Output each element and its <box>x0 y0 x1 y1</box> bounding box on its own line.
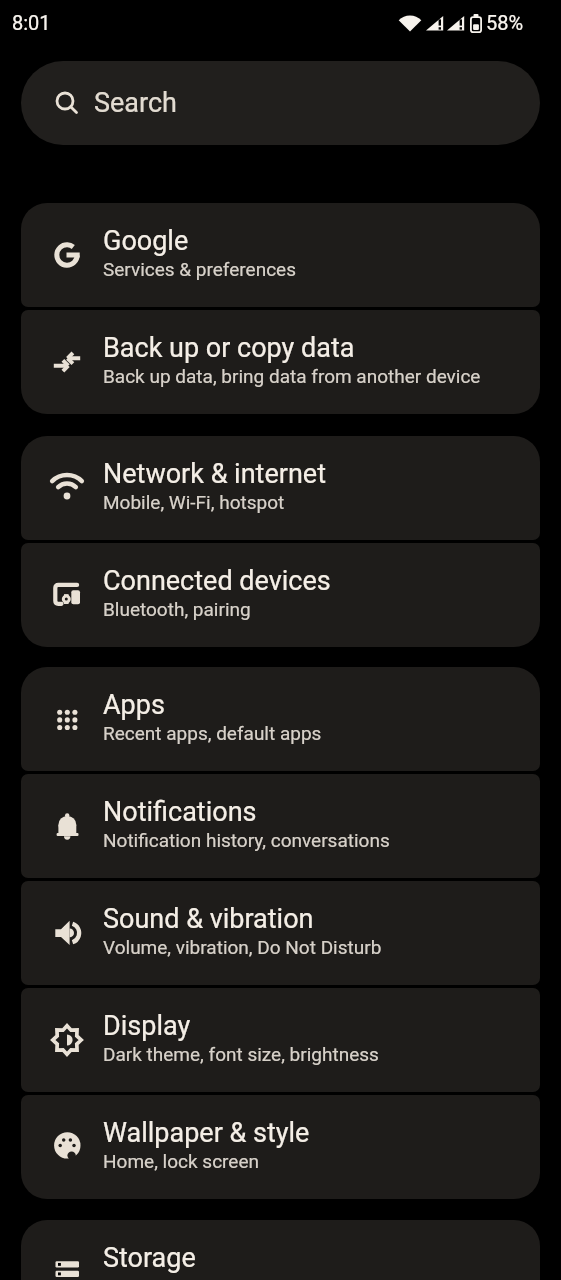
staticText: Search <box>94 87 177 119</box>
button[interactable]: Notifications <box>21 774 540 878</box>
button[interactable]: Network & internet <box>21 436 540 540</box>
staticText: Storage <box>103 1242 196 1274</box>
button[interactable]: Display <box>21 988 540 1092</box>
staticText: Apps <box>103 689 165 721</box>
staticText: Display <box>103 1010 191 1042</box>
button[interactable]: Apps <box>21 667 540 771</box>
staticText: Wallpaper & style <box>103 1117 310 1149</box>
button[interactable]: Wallpaper & style <box>21 1095 540 1199</box>
staticText: Services & preferences <box>103 258 296 280</box>
staticText: Volume, vibration, Do Not Disturb <box>103 936 382 958</box>
staticText: Notifications <box>103 796 257 828</box>
staticText: Recent apps, default apps <box>103 722 322 744</box>
button[interactable]: Storage <box>21 1220 540 1280</box>
button[interactable]: Search <box>21 61 540 145</box>
button[interactable]: Sound & vibration <box>21 881 540 985</box>
button[interactable]: Back up or copy data <box>21 310 540 414</box>
staticText: Sound & vibration <box>103 903 314 935</box>
staticText: Bluetooth, pairing <box>103 598 251 620</box>
staticText: Google <box>103 225 189 257</box>
staticText: 58% <box>486 11 524 34</box>
staticText: 8:01 <box>12 11 51 34</box>
staticText: Notification history, conversations <box>103 829 390 851</box>
button[interactable]: Connected devices <box>21 543 540 647</box>
staticText: Mobile, Wi-Fi, hotspot <box>103 491 285 513</box>
staticText: Connected devices <box>103 565 331 597</box>
button[interactable]: Google <box>21 203 540 307</box>
staticText: Back up or copy data <box>103 332 355 364</box>
staticText: Dark theme, font size, brightness <box>103 1043 379 1065</box>
staticText: Back up data, bring data from another de… <box>103 365 481 387</box>
staticText: Home, lock screen <box>103 1150 259 1172</box>
staticText: Network & internet <box>103 458 326 490</box>
